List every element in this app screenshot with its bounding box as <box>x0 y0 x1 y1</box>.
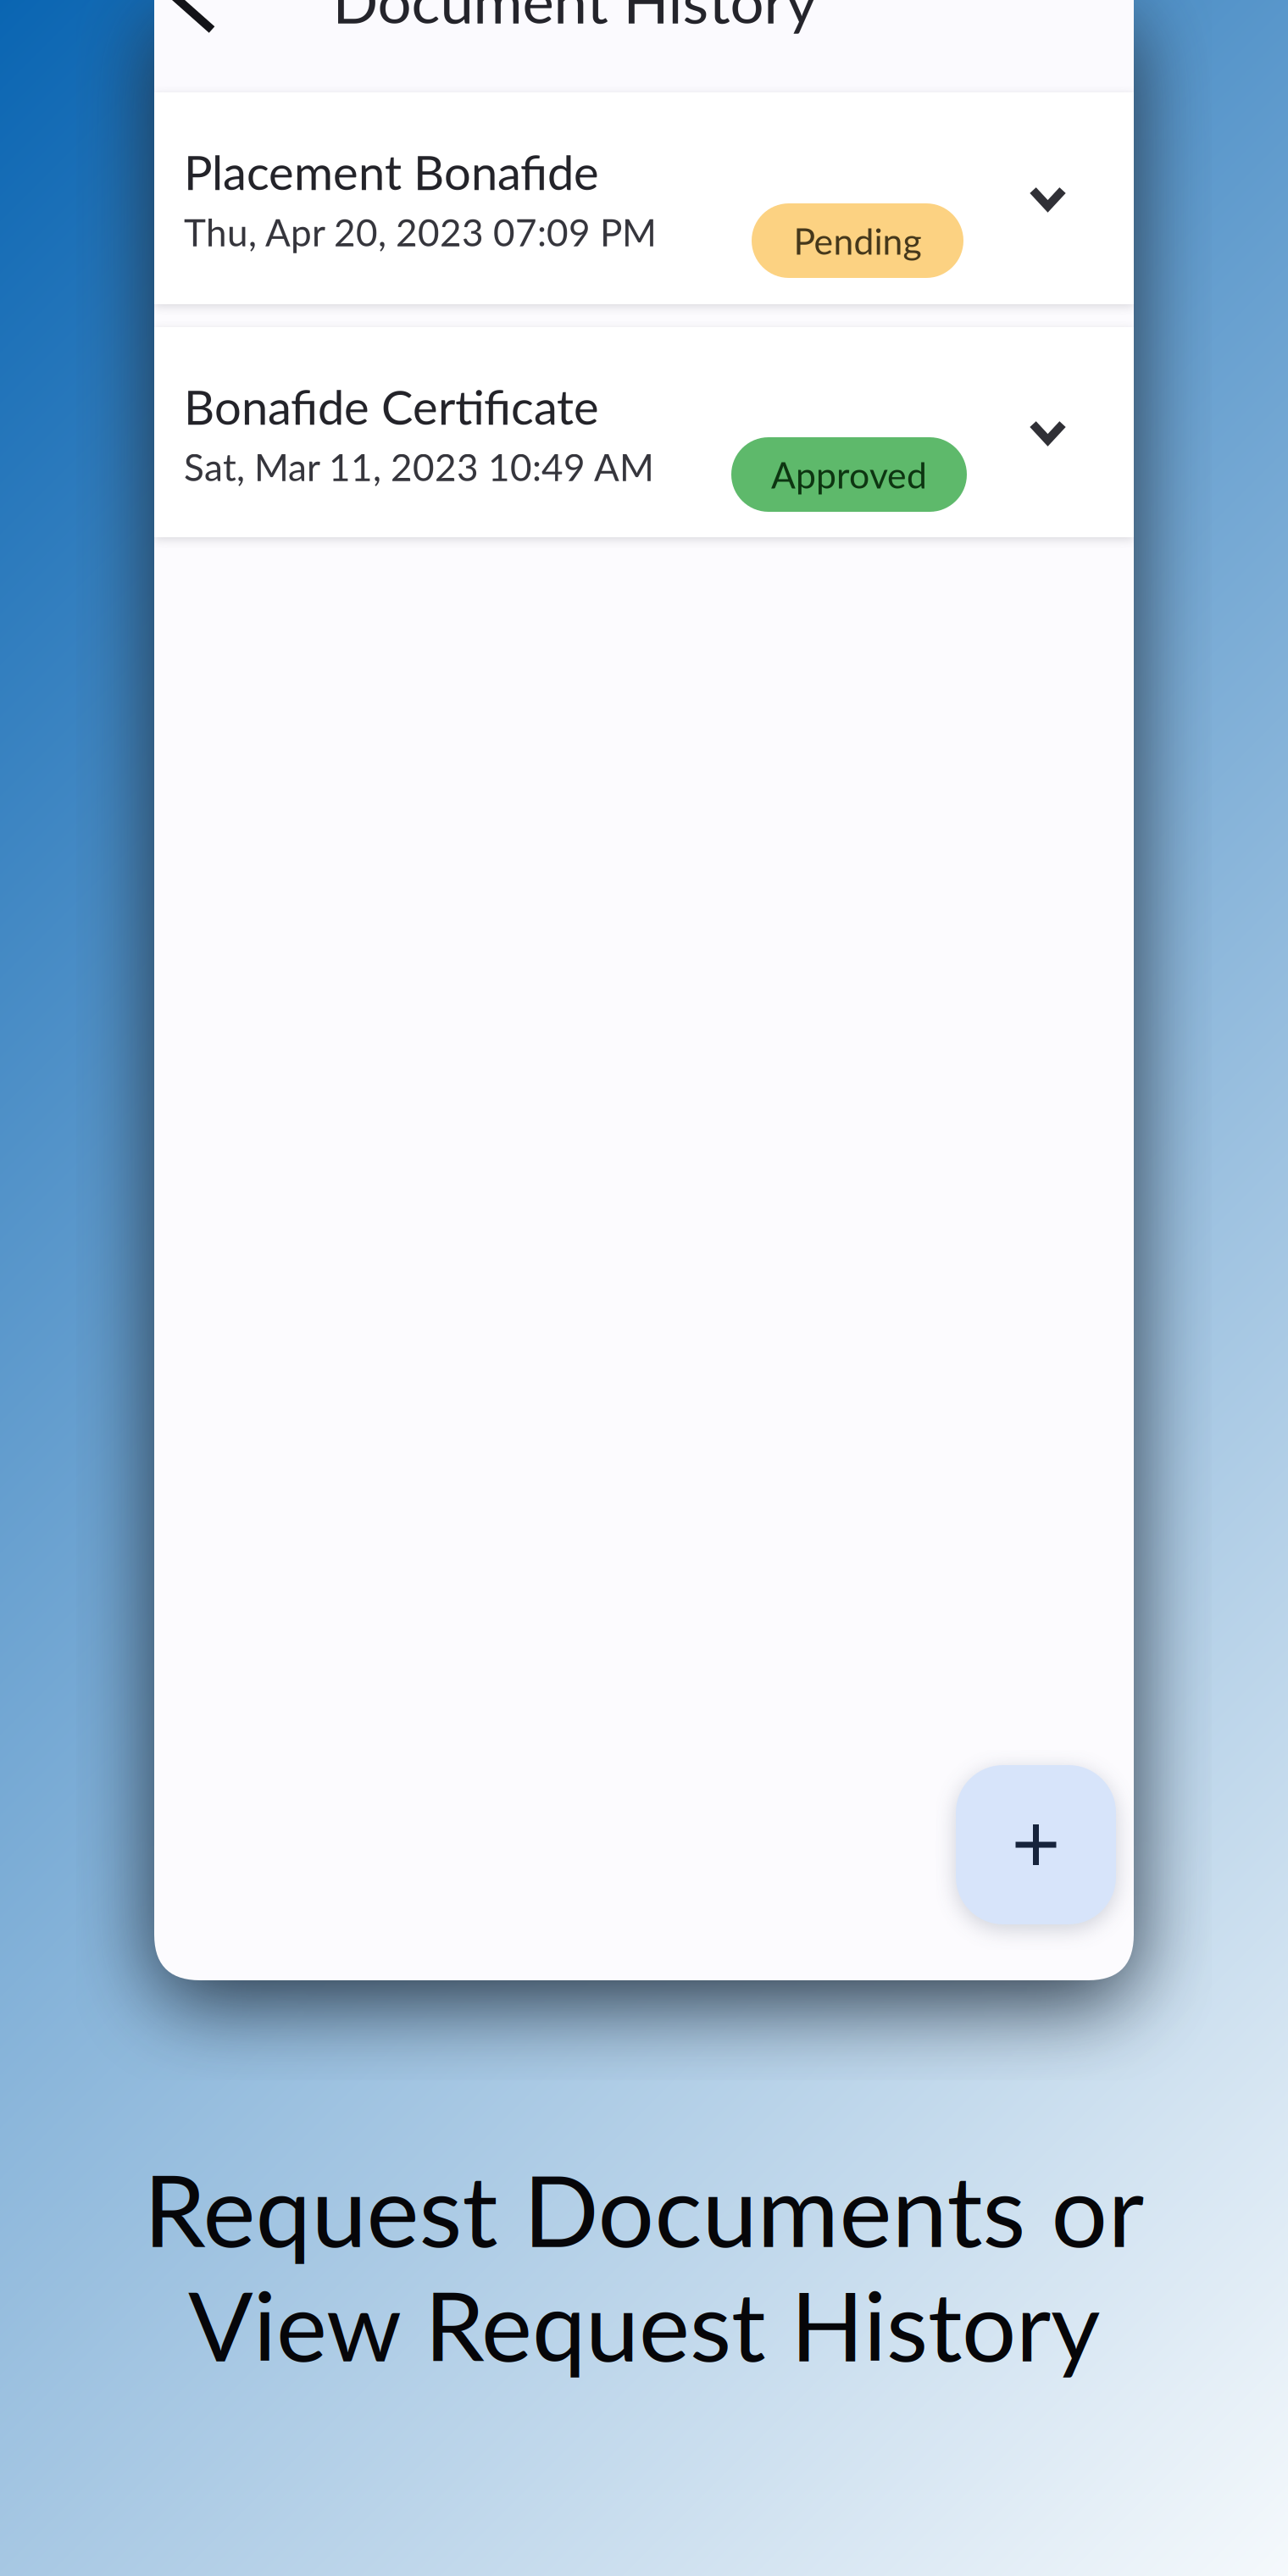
staticText: Placement Bonafide <box>184 143 599 200</box>
staticText: Thu, Apr 20, 2023 07:09 PM <box>184 209 657 254</box>
button[interactable]: Bonafide Certificate <box>154 327 1134 537</box>
staticText: Bonafide Certificate <box>184 378 599 435</box>
staticText: Document History <box>333 0 816 36</box>
staticText: Sat, Mar 11, 2023 10:49 AM <box>184 444 654 489</box>
button[interactable]: New request <box>956 1765 1116 1924</box>
staticText: Request Documents or <box>144 2149 1144 2268</box>
staticText: View Request History <box>188 2267 1100 2382</box>
staticText: Approved <box>771 453 927 496</box>
button[interactable]: Back <box>154 0 225 92</box>
button[interactable]: Placement Bonafide <box>154 92 1134 304</box>
staticText: Pending <box>794 219 922 262</box>
